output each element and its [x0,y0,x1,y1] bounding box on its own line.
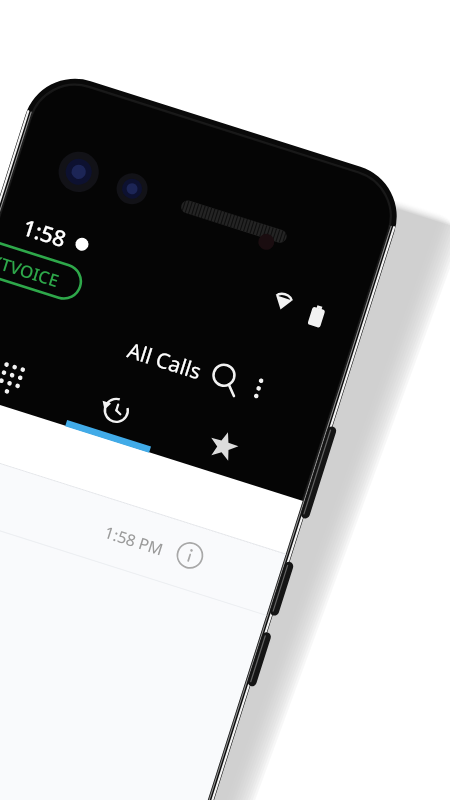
button[interactable]: Phone app recent calls screen [0,0,450,800]
